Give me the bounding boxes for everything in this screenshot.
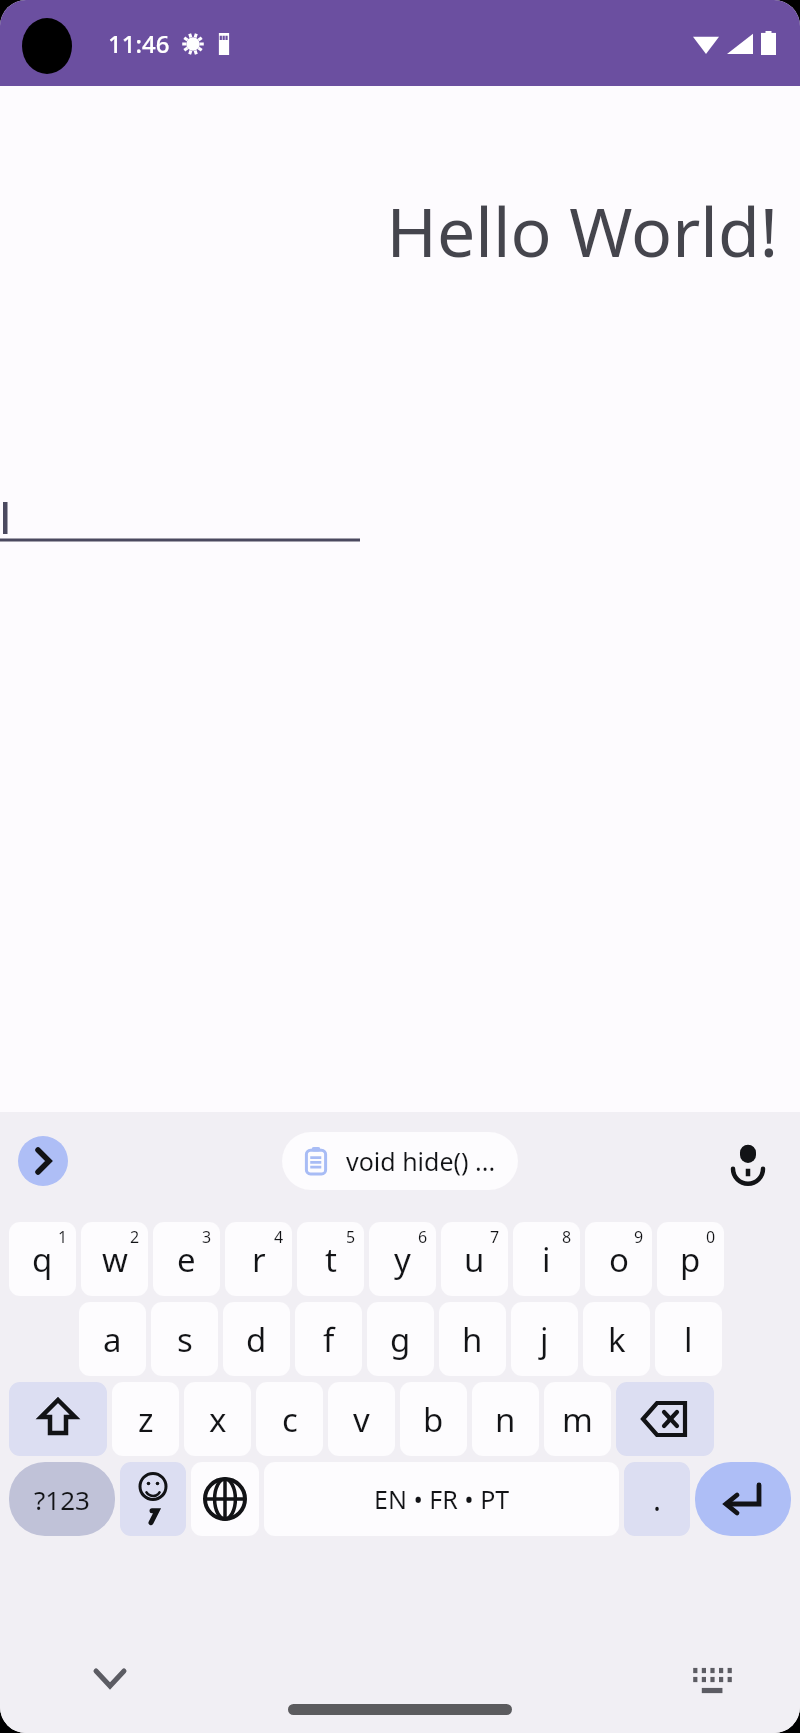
staticText: . [653, 1479, 662, 1520]
button[interactable]: r [225, 1222, 292, 1296]
button[interactable]: EN • FR • PT [264, 1462, 619, 1536]
staticText: Hello World! [386, 184, 778, 277]
staticText: e [177, 1237, 196, 1282]
button[interactable]: u [441, 1222, 508, 1296]
button[interactable]: void hide() ... [282, 1132, 518, 1190]
staticText: o [609, 1237, 629, 1282]
staticText: 11:46 [108, 27, 170, 60]
staticText: f [323, 1317, 335, 1362]
staticText: ?123 [34, 1482, 90, 1517]
button[interactable]: Emoji [120, 1462, 186, 1536]
button[interactable]: v [328, 1382, 395, 1456]
staticText: void hide() ... [346, 1144, 496, 1178]
staticText: n [495, 1397, 516, 1442]
staticText: 8 [562, 1226, 572, 1248]
staticText: i [542, 1237, 551, 1282]
button[interactable]: j [511, 1302, 578, 1376]
staticText: 0 [706, 1226, 716, 1248]
button[interactable]: z [112, 1382, 179, 1456]
staticText: u [464, 1237, 485, 1282]
button[interactable]: n [472, 1382, 539, 1456]
button[interactable]: l [655, 1302, 722, 1376]
button[interactable]: t [297, 1222, 364, 1296]
button[interactable]: e [153, 1222, 220, 1296]
button[interactable]: g [367, 1302, 434, 1376]
button[interactable]: o [585, 1222, 652, 1296]
staticText: x [209, 1397, 227, 1442]
button[interactable]: b [400, 1382, 467, 1456]
staticText: 2 [130, 1226, 140, 1248]
button[interactable] [0, 498, 360, 544]
button[interactable]: Hide keyboard [82, 1650, 138, 1706]
button[interactable]: w [81, 1222, 148, 1296]
button[interactable]: Backspace [616, 1382, 714, 1456]
button[interactable]: h [439, 1302, 506, 1376]
button[interactable]: q [9, 1222, 76, 1296]
button[interactable]: k [583, 1302, 650, 1376]
staticText: q [32, 1237, 53, 1282]
staticText: k [608, 1317, 626, 1362]
button[interactable]: f [295, 1302, 362, 1376]
staticText: 1 [58, 1226, 68, 1248]
staticText: m [562, 1397, 593, 1442]
button[interactable]: y [369, 1222, 436, 1296]
staticText: a [103, 1317, 122, 1362]
staticText: 7 [490, 1226, 500, 1248]
button[interactable]: Expand suggestions [18, 1136, 68, 1186]
button[interactable]: Change language [191, 1462, 259, 1536]
staticText: p [680, 1237, 701, 1282]
staticText: h [462, 1317, 483, 1362]
button[interactable]: ?123 [9, 1462, 115, 1536]
button[interactable]: Enter [695, 1462, 791, 1536]
staticText: j [540, 1317, 549, 1362]
staticText: 6 [418, 1226, 428, 1248]
staticText: t [325, 1237, 337, 1282]
button[interactable]: x [184, 1382, 251, 1456]
staticText: b [423, 1397, 444, 1442]
staticText: 3 [202, 1226, 212, 1248]
staticText: r [252, 1237, 266, 1282]
staticText: z [138, 1397, 154, 1442]
staticText: s [177, 1317, 193, 1362]
button[interactable]: Voice input [724, 1137, 772, 1185]
button[interactable]: s [151, 1302, 218, 1376]
staticText: 4 [274, 1226, 284, 1248]
staticText: l [684, 1317, 693, 1362]
button[interactable]: Shift [9, 1382, 107, 1456]
staticText: v [353, 1397, 370, 1442]
button[interactable]: d [223, 1302, 290, 1376]
staticText: 9 [634, 1226, 644, 1248]
staticText: w [102, 1237, 128, 1282]
staticText: d [246, 1317, 267, 1362]
staticText: 5 [346, 1226, 356, 1248]
staticText: EN • FR • PT [374, 1482, 510, 1516]
button[interactable]: i [513, 1222, 580, 1296]
button[interactable]: Switch keyboard [682, 1650, 738, 1706]
staticText: y [394, 1237, 411, 1282]
button[interactable]: a [79, 1302, 146, 1376]
button[interactable]: p [657, 1222, 724, 1296]
button[interactable]: . [624, 1462, 690, 1536]
staticText: c [282, 1397, 298, 1442]
button[interactable]: m [544, 1382, 611, 1456]
staticText: g [390, 1317, 411, 1362]
button[interactable]: c [256, 1382, 323, 1456]
